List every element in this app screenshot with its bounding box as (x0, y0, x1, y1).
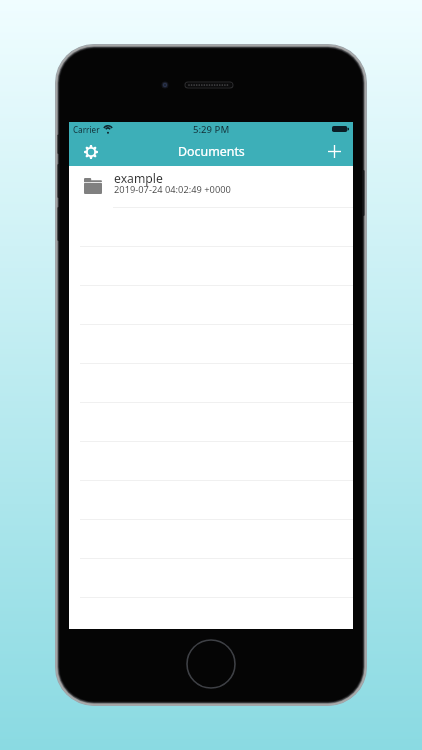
staticText: example (114, 170, 163, 187)
button[interactable]: Settings (69, 138, 112, 166)
staticText: 5:29 PM (193, 123, 230, 136)
button[interactable]: Add document (315, 138, 353, 166)
staticText: Documents (178, 143, 245, 160)
button[interactable]: example (69, 166, 353, 207)
staticText: 2019-07-24 04:02:49 +0000 (114, 183, 231, 196)
staticText: Carrier (73, 124, 100, 135)
